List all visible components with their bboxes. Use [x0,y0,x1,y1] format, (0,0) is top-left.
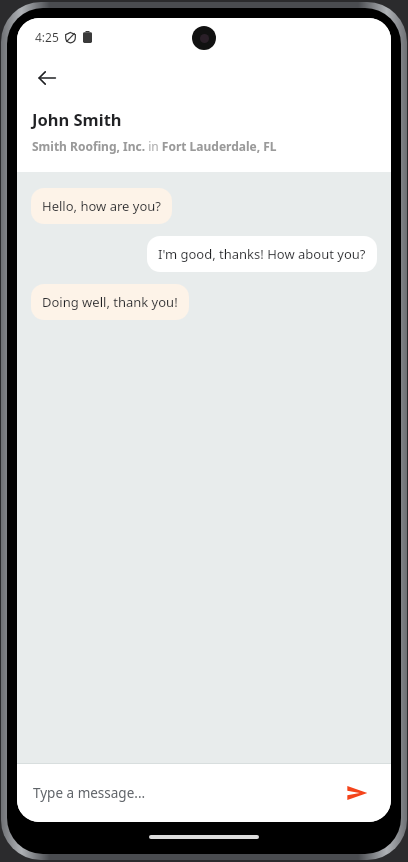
staticText: Type a message... [33,784,146,802]
staticText: Smith Roofing, Inc. in Fort Lauderdale, … [32,138,277,154]
staticText: 4:25 [35,29,59,45]
staticText: I'm good, thanks! How about you? [158,245,366,263]
button[interactable]: Back [25,56,69,100]
staticText: John Smith [32,108,122,130]
button[interactable]: Doing well, thank you! [31,284,189,320]
button[interactable]: Send [337,773,377,813]
button[interactable]: Hello, how are you? [31,188,172,224]
button[interactable]: Type a message... [33,764,337,822]
staticText: Hello, how are you? [42,197,161,215]
button[interactable]: I'm good, thanks! How about you? [147,236,377,272]
staticText: Doing well, thank you! [42,293,178,311]
